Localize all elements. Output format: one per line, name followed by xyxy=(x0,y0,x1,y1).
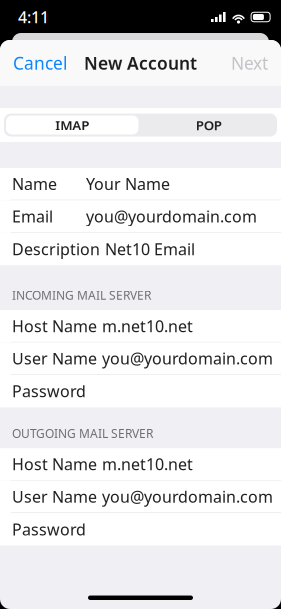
staticText: Description xyxy=(12,238,100,260)
button[interactable]: Password xyxy=(0,375,281,407)
staticText: POP xyxy=(196,116,222,134)
button[interactable]: Password xyxy=(0,513,281,545)
button[interactable]: Next xyxy=(225,42,281,83)
staticText: you@yourdomain.com xyxy=(86,206,257,227)
staticText: 4:11 xyxy=(18,6,49,28)
button[interactable]: User Name xyxy=(0,342,281,375)
button[interactable]: Email xyxy=(0,200,281,233)
staticText: you@yourdomain.com xyxy=(102,348,273,369)
button[interactable]: Host Name xyxy=(0,310,281,342)
staticText: Your Name xyxy=(86,173,170,194)
button[interactable]: Cancel xyxy=(0,42,73,83)
staticText: Host Name xyxy=(12,453,97,475)
staticText: Host Name xyxy=(12,315,97,337)
button[interactable]: Description xyxy=(0,233,281,265)
staticText: Password xyxy=(12,380,86,402)
staticText: User Name xyxy=(12,486,97,507)
staticText: IMAP xyxy=(55,116,89,134)
staticText: Cancel xyxy=(13,51,67,74)
button[interactable]: IMAP xyxy=(4,113,140,136)
button[interactable]: POP xyxy=(140,116,277,134)
staticText: Password xyxy=(12,519,86,540)
staticText: Name xyxy=(12,173,57,194)
staticText: INCOMING MAIL SERVER xyxy=(12,287,151,303)
button[interactable]: User Name xyxy=(0,481,281,513)
staticText: Net10 Email xyxy=(105,238,195,260)
staticText: New Account xyxy=(84,51,197,74)
staticText: m.net10.net xyxy=(102,315,193,337)
staticText: Next xyxy=(231,51,268,74)
staticText: you@yourdomain.com xyxy=(102,486,273,507)
staticText: m.net10.net xyxy=(102,453,193,475)
button[interactable]: Name xyxy=(0,168,281,200)
staticText: Email xyxy=(12,206,53,227)
staticText: User Name xyxy=(12,348,97,369)
staticText: OUTGOING MAIL SERVER xyxy=(12,425,153,441)
button[interactable]: Host Name xyxy=(0,448,281,481)
